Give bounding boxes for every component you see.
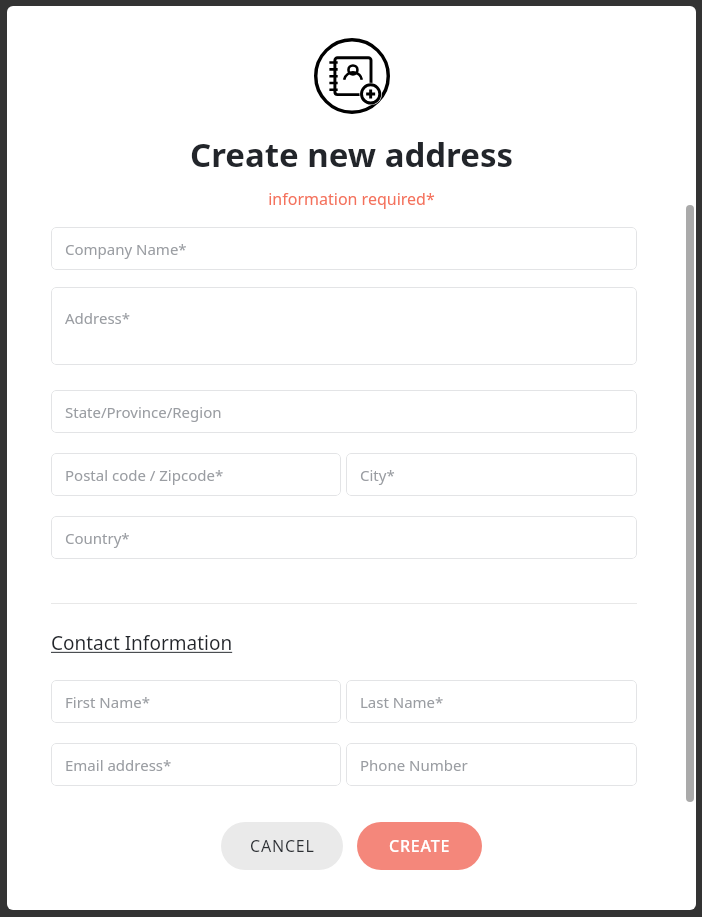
staticText: First Name* bbox=[65, 692, 150, 712]
button[interactable]: Contact Information bbox=[51, 630, 233, 656]
button[interactable]: State/Province/Region bbox=[51, 390, 637, 433]
staticText: City* bbox=[360, 465, 395, 485]
staticText: Last Name* bbox=[360, 692, 444, 712]
button[interactable]: Company Name* bbox=[51, 227, 637, 270]
staticText: Contact Information bbox=[51, 630, 233, 656]
button[interactable]: Phone Number bbox=[346, 743, 637, 786]
button[interactable]: Postal code / Zipcode* bbox=[51, 453, 341, 496]
button[interactable]: CREATE bbox=[357, 822, 482, 870]
staticText: CANCEL bbox=[250, 835, 315, 857]
button[interactable]: First Name* bbox=[51, 680, 341, 723]
staticText: Company Name* bbox=[65, 239, 187, 259]
button[interactable]: Last Name* bbox=[346, 680, 637, 723]
button[interactable]: Address* bbox=[51, 287, 637, 365]
staticText: Address* bbox=[65, 308, 131, 328]
button[interactable]: CANCEL bbox=[221, 822, 343, 870]
staticText: Country* bbox=[65, 528, 130, 548]
staticText: Phone Number bbox=[360, 755, 468, 775]
staticText: Postal code / Zipcode* bbox=[65, 465, 224, 485]
staticText: Create new address bbox=[7, 132, 696, 177]
staticText: information required* bbox=[7, 188, 696, 210]
staticText: Email address* bbox=[65, 755, 172, 775]
button[interactable]: Email address* bbox=[51, 743, 341, 786]
button[interactable]: City* bbox=[346, 453, 637, 496]
other: New address bbox=[314, 38, 390, 114]
staticText: CREATE bbox=[389, 835, 451, 857]
staticText: State/Province/Region bbox=[65, 402, 222, 422]
button[interactable]: Country* bbox=[51, 516, 637, 559]
